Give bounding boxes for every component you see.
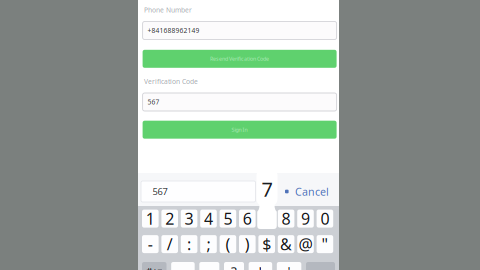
button[interactable]: @	[297, 235, 314, 253]
staticText: '	[288, 262, 291, 270]
staticText: Sign In	[232, 126, 248, 133]
staticText: 0	[320, 208, 329, 229]
button[interactable]: 3	[181, 210, 197, 228]
staticText: 5	[223, 208, 232, 229]
button[interactable]: 2	[161, 210, 178, 228]
staticText: Verification Code	[144, 77, 198, 86]
button[interactable]: '	[277, 262, 301, 270]
staticText: 2	[165, 208, 174, 229]
staticText: 8	[282, 208, 291, 229]
button[interactable]: ;	[200, 235, 217, 253]
staticText: 567	[148, 98, 160, 106]
staticText: /	[167, 233, 173, 255]
button[interactable]: 1	[142, 210, 159, 228]
staticText: @	[298, 233, 312, 255]
button[interactable]: ?	[224, 262, 244, 270]
staticText: Phone Number	[144, 6, 192, 14]
button[interactable]: "	[317, 235, 333, 253]
button[interactable]: !	[249, 262, 272, 270]
staticText: !	[258, 262, 262, 270]
button[interactable]: 5	[220, 210, 236, 228]
button[interactable]: -	[142, 235, 159, 253]
staticText: 6	[243, 208, 252, 229]
staticText: :	[187, 233, 191, 255]
button[interactable]: 9	[297, 210, 314, 228]
staticText: "	[321, 233, 328, 255]
button[interactable]: )	[239, 235, 256, 253]
button[interactable]: 8	[278, 210, 294, 228]
button[interactable]: 6	[239, 210, 256, 228]
staticText: )	[245, 233, 250, 255]
button[interactable]: ,	[199, 262, 219, 270]
staticText: ;	[206, 233, 210, 255]
button[interactable]: :	[181, 235, 197, 253]
button[interactable]: (	[220, 235, 236, 253]
staticText: 7	[261, 176, 272, 202]
button[interactable]: &	[278, 235, 294, 253]
staticText: #+=	[146, 265, 162, 270]
button[interactable]: 0	[317, 210, 333, 228]
staticText: $	[262, 233, 271, 255]
button[interactable]: Sign In	[143, 121, 337, 139]
staticText: ?	[231, 262, 237, 270]
button[interactable]: .	[171, 262, 195, 270]
staticText: 4	[204, 208, 213, 229]
staticText: 3	[185, 208, 194, 229]
staticText: 567	[152, 185, 167, 198]
button[interactable]: /	[161, 235, 178, 253]
button[interactable]: Cancel	[285, 183, 337, 199]
staticText: -	[148, 233, 153, 255]
staticText: 9	[301, 208, 310, 229]
staticText: Resend Verification Code	[210, 55, 269, 62]
button[interactable]: Resend Verification Code	[143, 50, 337, 68]
staticText: (	[225, 233, 230, 255]
button[interactable]: #+=	[142, 262, 166, 270]
staticText: +841688962149	[148, 26, 200, 35]
staticText: Cancel	[295, 184, 329, 199]
button[interactable]: 4	[200, 210, 217, 228]
staticText: &	[280, 233, 292, 255]
button[interactable]: $	[258, 235, 275, 253]
staticText: 1	[146, 208, 155, 229]
